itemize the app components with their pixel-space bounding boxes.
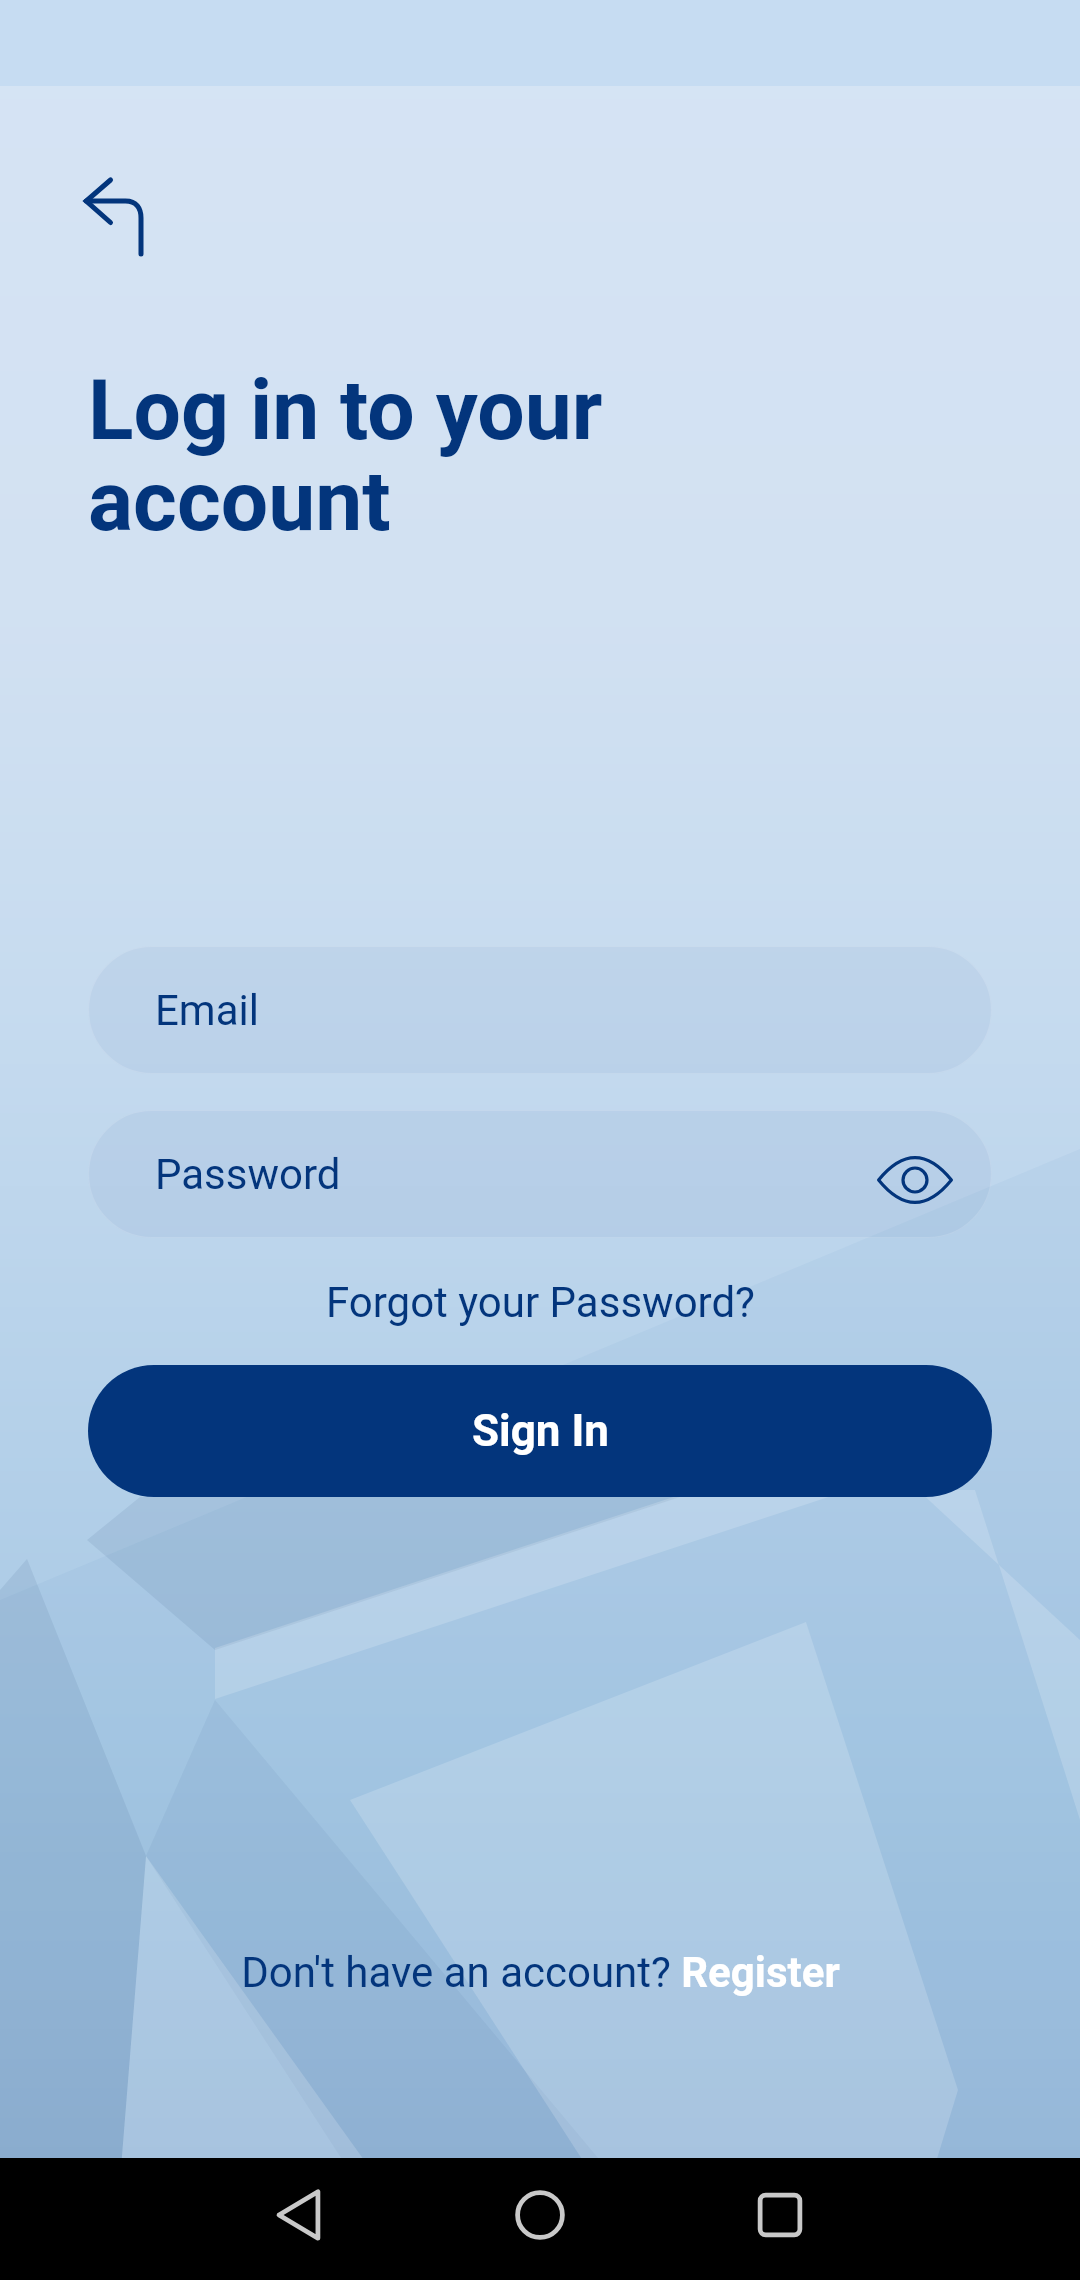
staticText: Log in to your account bbox=[88, 361, 603, 551]
staticText: Forgot your Password? bbox=[326, 1278, 755, 1327]
button[interactable]: Recent apps bbox=[752, 2187, 808, 2243]
button[interactable]: Email bbox=[88, 946, 992, 1074]
staticText: Password bbox=[155, 1150, 341, 1199]
button[interactable]: Sign In bbox=[88, 1365, 992, 1497]
button[interactable]: Back bbox=[272, 2187, 328, 2243]
button[interactable]: Don't have an account? Register bbox=[0, 1941, 1080, 2003]
button[interactable]: Forgot your Password? bbox=[0, 1272, 1080, 1332]
staticText: Don't have an account? Register bbox=[241, 1948, 840, 1997]
button[interactable]: Show password bbox=[875, 1140, 955, 1220]
button[interactable]: Password bbox=[88, 1110, 992, 1238]
staticText: Sign In bbox=[472, 1405, 609, 1457]
button[interactable]: Home bbox=[512, 2187, 568, 2243]
staticText: Email bbox=[155, 986, 259, 1035]
button[interactable]: Back bbox=[80, 168, 180, 268]
